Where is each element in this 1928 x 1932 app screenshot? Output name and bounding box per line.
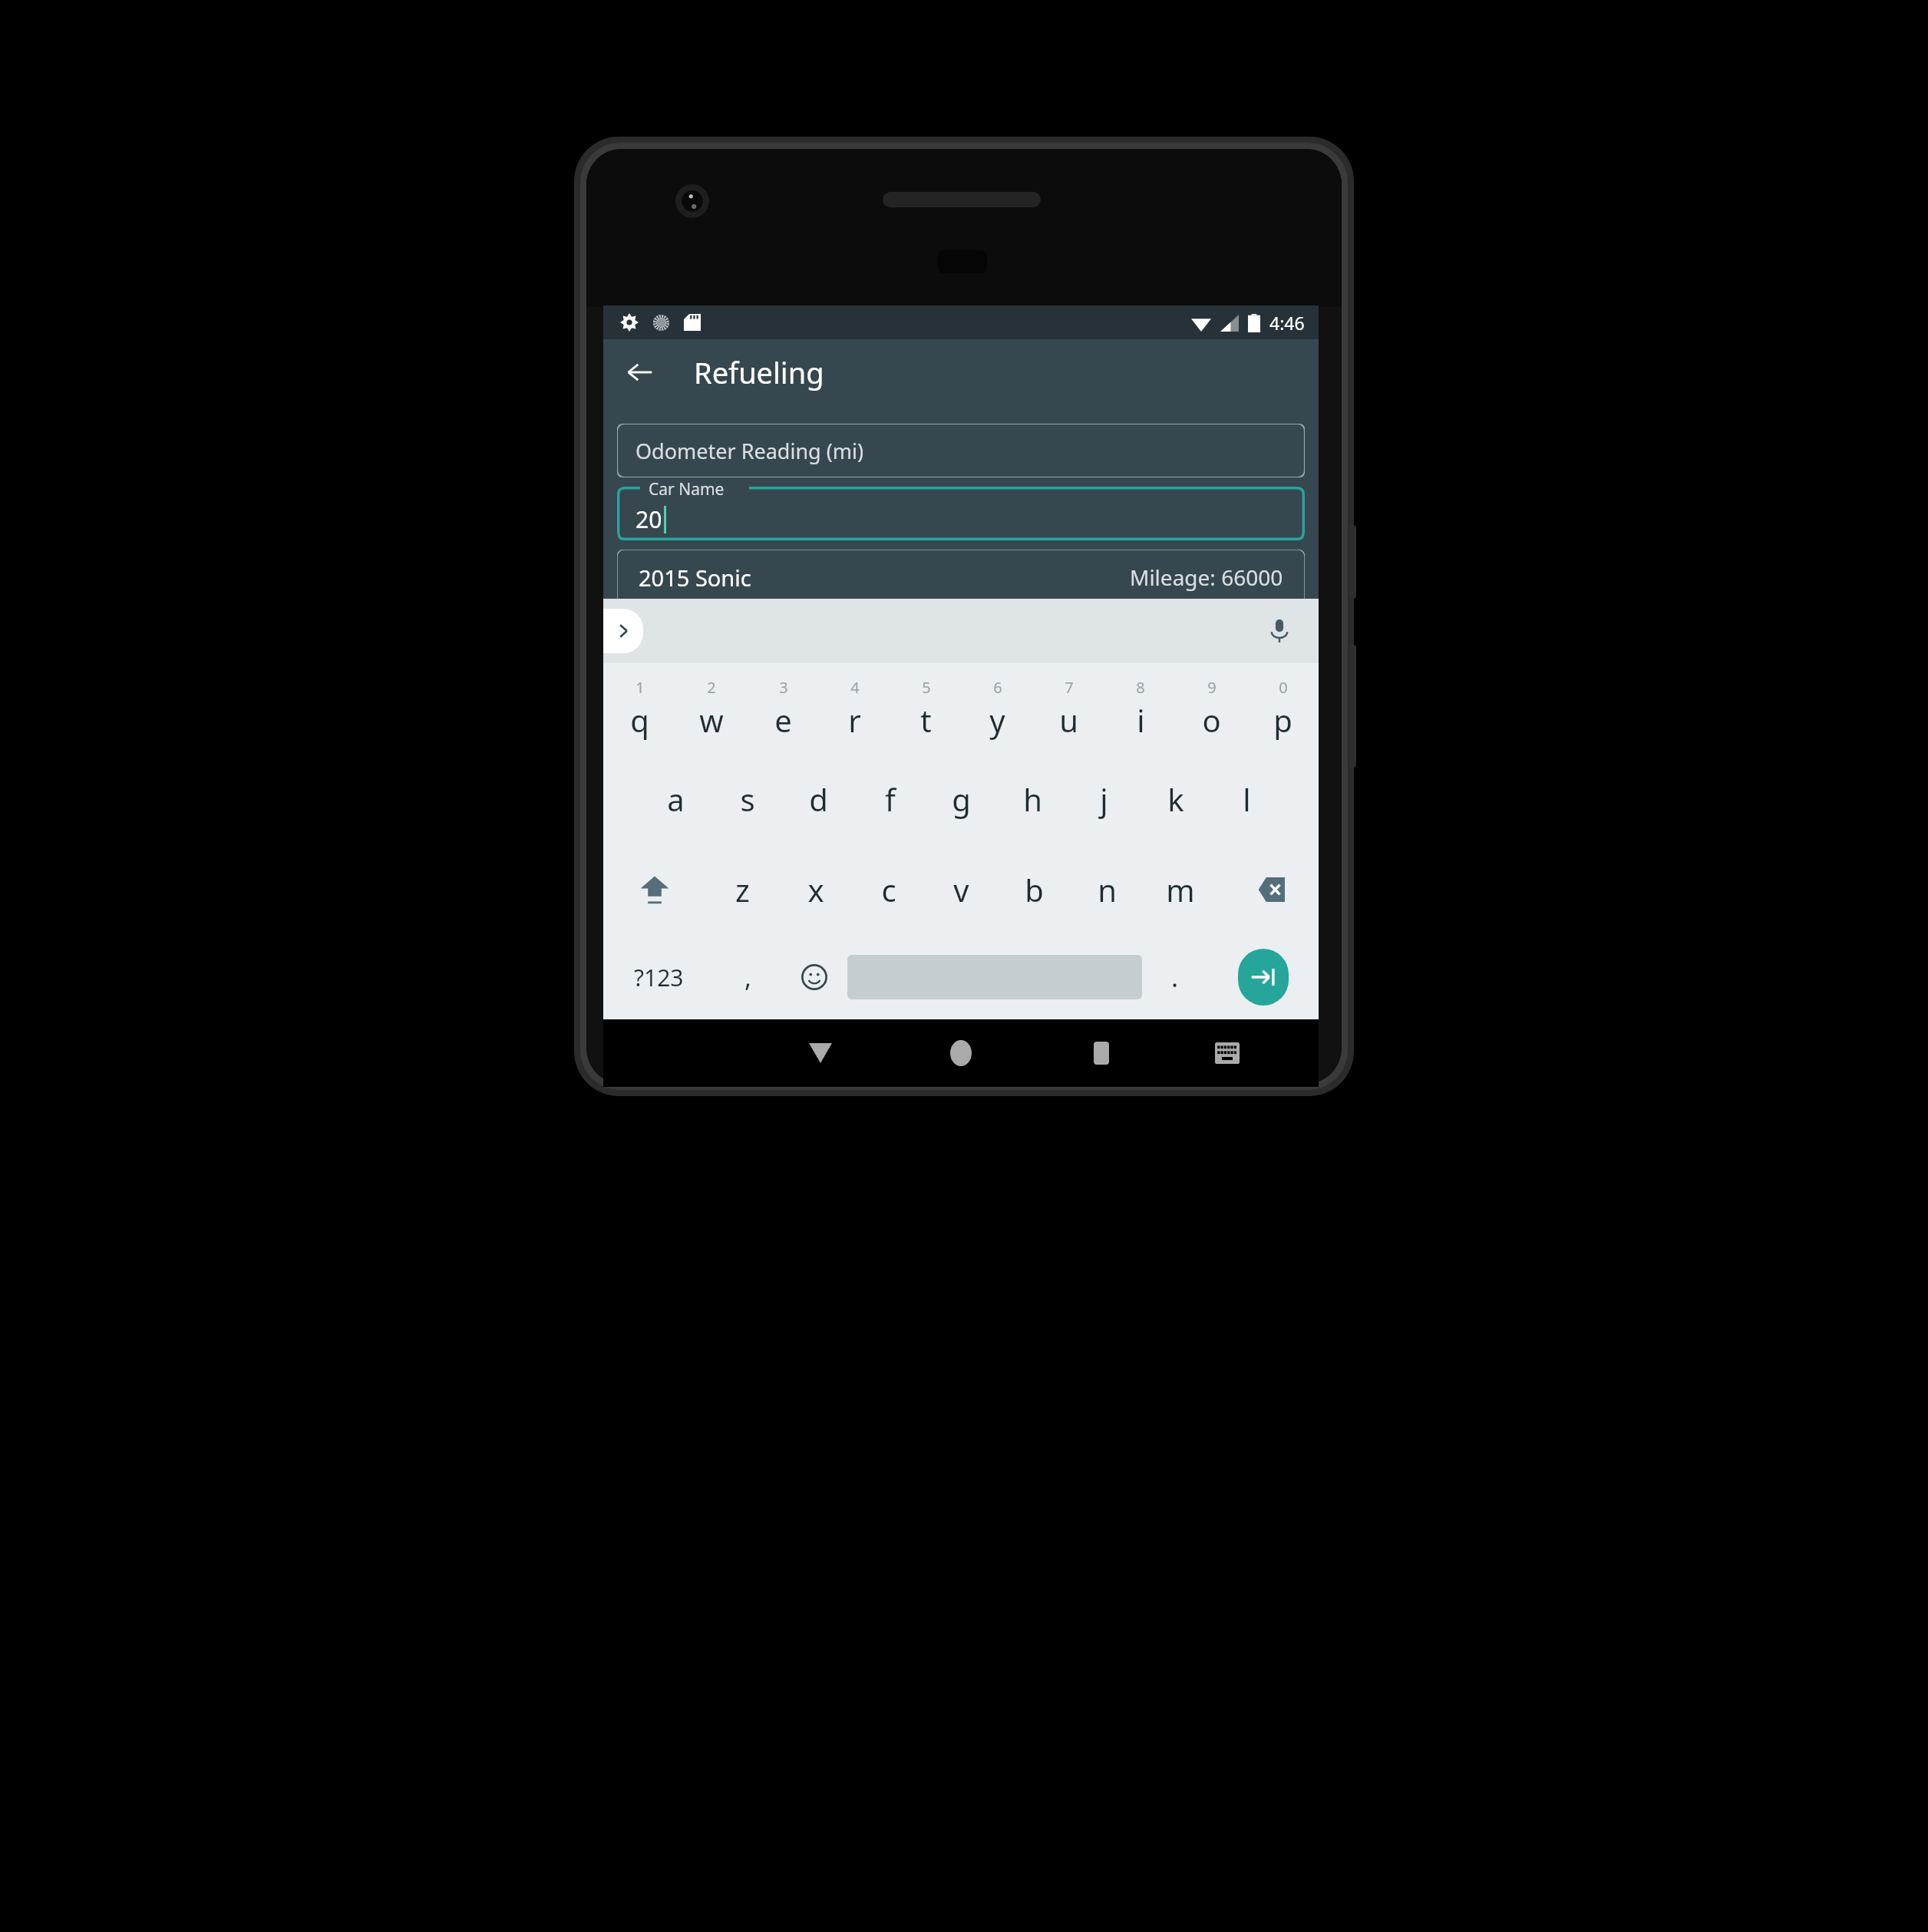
staticText: u xyxy=(1059,699,1078,741)
button[interactable]: 2015 Sonic xyxy=(617,550,1305,605)
button[interactable]: Odometer Reading (mi) xyxy=(617,424,1305,477)
staticText: 20 xyxy=(636,504,662,535)
button[interactable]: 3 xyxy=(748,663,819,754)
staticText: 6 xyxy=(993,677,1002,698)
button[interactable]: n xyxy=(1071,844,1144,935)
staticText: d xyxy=(809,778,828,820)
button[interactable]: Pick date xyxy=(1262,706,1305,749)
staticText: j xyxy=(1100,778,1108,820)
staticText: s xyxy=(740,778,755,820)
staticText: ?123 xyxy=(634,962,684,993)
staticText: v xyxy=(953,869,969,910)
button[interactable]: Car Name xyxy=(617,487,1305,540)
button[interactable]: 6 xyxy=(962,663,1033,754)
staticText: Refueling xyxy=(694,352,824,392)
button[interactable]: c xyxy=(852,844,925,935)
button[interactable]: 1 xyxy=(603,663,675,754)
staticText: 5 xyxy=(922,677,931,698)
staticText: Odometer Reading (mi) xyxy=(636,437,864,465)
staticText: r xyxy=(848,699,861,741)
staticText: 2 xyxy=(707,677,716,698)
button[interactable]: Back xyxy=(619,351,662,394)
staticText: 7 xyxy=(1065,677,1074,698)
button[interactable]: b xyxy=(998,844,1071,935)
staticText: o xyxy=(1202,699,1221,741)
button[interactable]: , xyxy=(715,935,781,1019)
staticText: b xyxy=(1025,869,1044,910)
staticText: w xyxy=(699,699,724,741)
button[interactable]: d xyxy=(783,754,854,844)
staticText: , xyxy=(744,959,752,995)
button[interactable]: l xyxy=(1211,754,1283,844)
staticText: k xyxy=(1167,778,1184,820)
staticText: f xyxy=(885,778,896,820)
staticText: m xyxy=(1166,869,1195,910)
button[interactable]: f xyxy=(854,754,926,844)
staticText: y xyxy=(989,699,1005,741)
button[interactable]: 2 xyxy=(675,663,748,754)
button[interactable]: Switch keyboard xyxy=(1171,1019,1283,1087)
staticText: t xyxy=(920,699,932,741)
button[interactable]: Total Price (USD) xyxy=(617,613,1305,666)
staticText: 1 xyxy=(636,677,645,698)
button[interactable]: Refueling Date xyxy=(617,701,1248,755)
staticText: 2015 Sonic xyxy=(639,563,751,593)
button[interactable]: Next xyxy=(1238,949,1289,1006)
staticText: Mileage: 66000 xyxy=(1130,563,1283,592)
staticText: Car Name xyxy=(649,478,725,500)
staticText: p xyxy=(1273,699,1292,741)
staticText: 9 xyxy=(1207,677,1217,698)
staticText: 4:46 xyxy=(1269,311,1305,335)
button[interactable]: 0 xyxy=(1247,663,1319,754)
button[interactable]: s xyxy=(711,754,783,844)
staticText: 4 xyxy=(850,677,860,698)
staticText: . xyxy=(1171,959,1179,995)
staticText: a xyxy=(667,778,685,820)
staticText: 8 xyxy=(1136,677,1145,698)
button[interactable]: g xyxy=(926,754,997,844)
button[interactable]: 4 xyxy=(819,663,890,754)
button[interactable]: m xyxy=(1144,844,1217,935)
button[interactable]: a xyxy=(640,754,711,844)
button[interactable]: 8 xyxy=(1104,663,1176,754)
button[interactable]: x xyxy=(779,844,852,935)
staticText: 0 xyxy=(1279,677,1288,698)
button[interactable]: Voice input xyxy=(1262,613,1297,649)
button[interactable]: 5 xyxy=(890,663,962,754)
button[interactable]: k xyxy=(1140,754,1211,844)
button[interactable]: Expand suggestions xyxy=(603,609,643,653)
button[interactable]: Backspace xyxy=(1217,844,1319,935)
staticText: x xyxy=(807,869,824,910)
button[interactable]: Recents xyxy=(1031,1019,1171,1087)
button[interactable]: Back xyxy=(750,1019,890,1087)
button[interactable]: 9 xyxy=(1176,663,1247,754)
button[interactable]: z xyxy=(706,844,779,935)
button[interactable]: j xyxy=(1068,754,1140,844)
staticText: 3 xyxy=(779,677,788,698)
button[interactable]: Shift xyxy=(603,844,706,935)
button[interactable]: Emoji xyxy=(781,935,847,1019)
staticText: n xyxy=(1098,869,1117,910)
button[interactable]: v xyxy=(925,844,998,935)
staticText: z xyxy=(735,869,750,910)
button[interactable]: ?123 xyxy=(603,935,715,1019)
staticText: e xyxy=(774,699,792,741)
staticText: l xyxy=(1243,778,1251,820)
staticText: q xyxy=(630,699,649,741)
button[interactable]: h xyxy=(997,754,1068,844)
staticText: i xyxy=(1137,699,1145,741)
button[interactable]: . xyxy=(1142,935,1208,1019)
staticText: g xyxy=(952,778,971,820)
staticText: Refueling Date xyxy=(636,714,780,742)
button[interactable]: Home xyxy=(890,1019,1031,1087)
button[interactable]: 7 xyxy=(1033,663,1104,754)
staticText: c xyxy=(881,869,896,910)
staticText: Total Price (USD) xyxy=(636,626,796,654)
staticText: h xyxy=(1023,778,1042,820)
